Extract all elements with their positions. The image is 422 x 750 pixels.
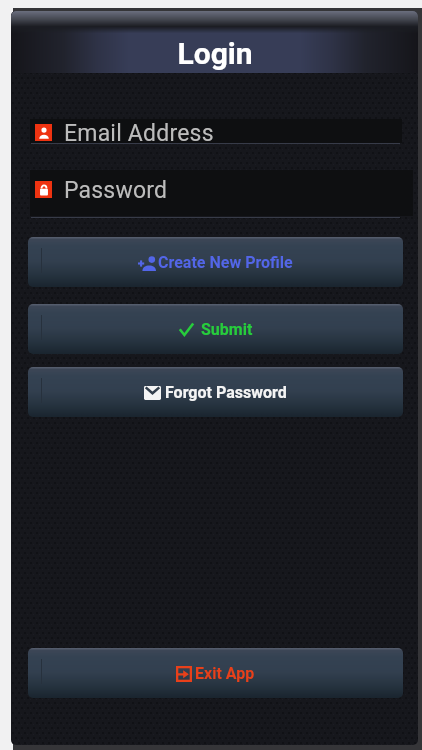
button[interactable]: Submit: [28, 304, 403, 354]
staticText: Email Address: [64, 120, 214, 147]
staticText: Submit: [201, 320, 253, 339]
button[interactable]: Create New Profile: [28, 237, 403, 287]
staticText: Password: [64, 177, 168, 204]
button[interactable]: [30, 119, 402, 143]
staticText: Exit App: [195, 664, 255, 683]
staticText: Login: [177, 36, 253, 71]
button[interactable]: Exit App: [28, 648, 403, 698]
staticText: Forgot Password: [165, 383, 287, 402]
button[interactable]: [30, 170, 413, 216]
button[interactable]: Forgot Password: [28, 367, 403, 417]
staticText: Create New Profile: [158, 253, 293, 272]
